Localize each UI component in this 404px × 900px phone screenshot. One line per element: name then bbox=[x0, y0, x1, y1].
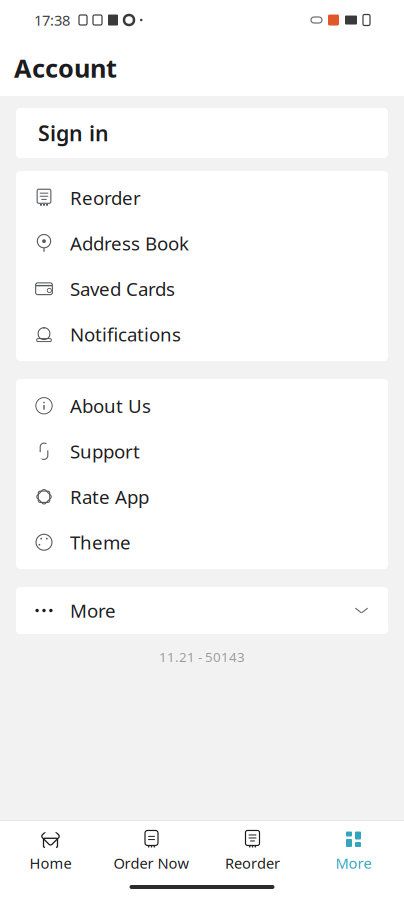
button[interactable]: Home bbox=[0, 827, 101, 875]
staticText: Rate App bbox=[70, 484, 149, 509]
button[interactable]: Theme bbox=[16, 519, 388, 565]
button[interactable]: Reorder bbox=[16, 175, 388, 220]
staticText: Reorder bbox=[70, 185, 141, 210]
staticText: Theme bbox=[70, 530, 131, 555]
staticText: Address Book bbox=[70, 231, 189, 256]
staticText: 17:38 bbox=[34, 10, 70, 30]
staticText: Order Now bbox=[113, 853, 189, 873]
staticText: More bbox=[335, 853, 371, 873]
staticText: More bbox=[70, 598, 116, 623]
button[interactable]: Reorder bbox=[202, 827, 303, 875]
staticText: Sign in bbox=[38, 119, 109, 147]
staticText: 11.21 - 50143 bbox=[159, 648, 245, 666]
button[interactable]: About Us bbox=[16, 383, 388, 428]
button[interactable]: Support bbox=[16, 428, 388, 474]
staticText: Support bbox=[70, 439, 140, 464]
staticText: About Us bbox=[70, 393, 151, 418]
button[interactable]: Address Book bbox=[16, 220, 388, 266]
button[interactable]: Rate App bbox=[16, 474, 388, 519]
staticText: Reorder bbox=[225, 853, 280, 873]
staticText: Notifications bbox=[70, 322, 181, 347]
button[interactable]: More bbox=[303, 827, 404, 875]
staticText: Home bbox=[29, 853, 71, 873]
button[interactable]: Notifications bbox=[16, 311, 388, 357]
button[interactable]: More bbox=[16, 587, 388, 634]
button[interactable]: Saved Cards bbox=[16, 266, 388, 311]
button[interactable]: Order Now bbox=[101, 827, 202, 875]
staticText: Account bbox=[14, 51, 117, 85]
button[interactable]: Sign in bbox=[16, 108, 388, 158]
staticText: Saved Cards bbox=[70, 276, 175, 301]
